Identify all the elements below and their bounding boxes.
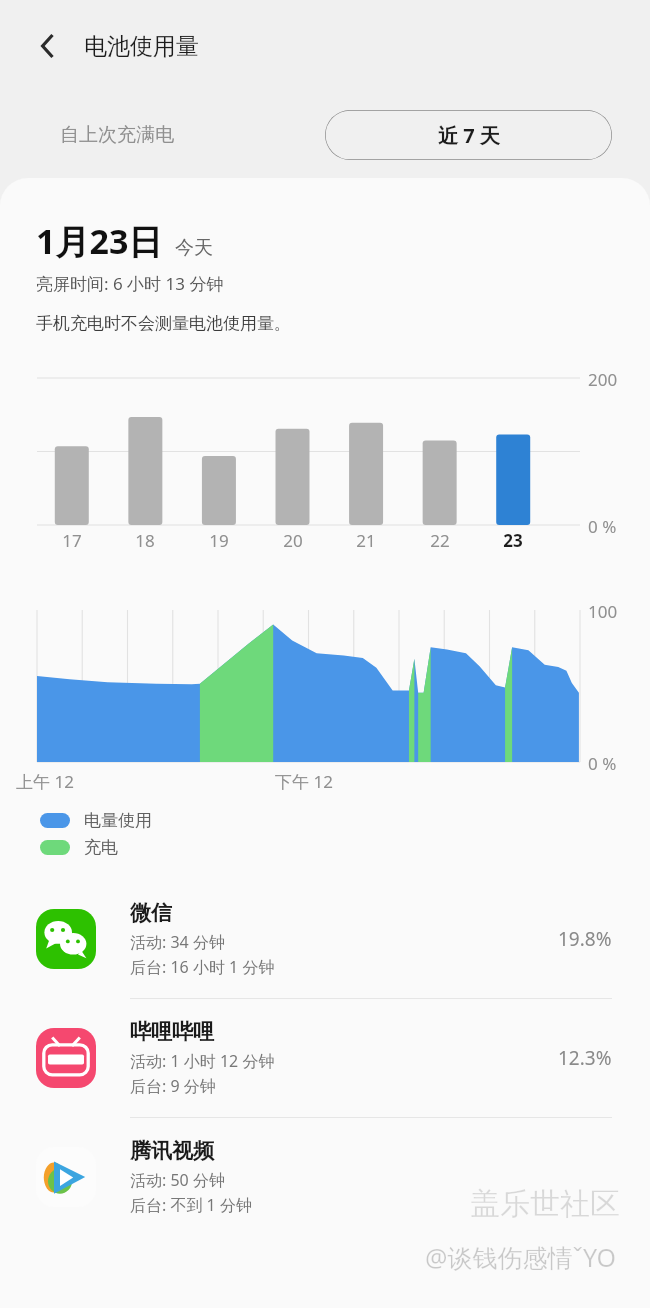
staticText: 活动: 1 小时 12 分钟 xyxy=(130,1050,275,1072)
staticText: 自上次充满电 xyxy=(60,123,174,147)
staticText: 电量使用 xyxy=(84,810,152,831)
staticText: 活动: 50 分钟 xyxy=(130,1169,225,1191)
button[interactable]: 微信 xyxy=(0,880,650,998)
staticText: 腾讯视频 xyxy=(130,1138,214,1164)
staticText: 上午 12 xyxy=(16,770,74,792)
staticText: 亮屏时间: 6 小时 13 分钟 xyxy=(36,272,224,295)
button[interactable]: 腾讯视频 xyxy=(0,1118,650,1236)
staticText: 12.3% xyxy=(558,1045,612,1071)
staticText: 近 7 天 xyxy=(438,122,500,149)
staticText: 0 % xyxy=(588,752,617,775)
staticText: 23 xyxy=(497,529,529,552)
staticText: 20 xyxy=(277,529,309,552)
button[interactable]: 哔哩哔哩 xyxy=(0,999,650,1117)
staticText: 后台: 16 小时 1 分钟 xyxy=(130,956,275,978)
staticText: 19 xyxy=(203,529,235,552)
staticText: 22 xyxy=(424,529,456,552)
staticText: 21 xyxy=(350,529,382,552)
staticText: 后台: 9 分钟 xyxy=(130,1075,216,1097)
staticText: 活动: 34 分钟 xyxy=(130,931,225,953)
staticText: 200 xyxy=(588,368,618,391)
staticText: 盖乐世社区 xyxy=(470,1185,620,1223)
staticText: 1月23日 xyxy=(36,218,163,264)
staticText: 电池使用量 xyxy=(84,32,199,61)
staticText: 充电 xyxy=(84,837,118,858)
staticText: 下午 12 xyxy=(275,770,333,792)
staticText: 100 xyxy=(588,600,618,623)
staticText: 今天 xyxy=(175,236,213,260)
staticText: 19.8% xyxy=(558,926,612,952)
staticText: @谈钱伤感情ˇYO xyxy=(425,1240,617,1274)
staticText: 18 xyxy=(129,529,161,552)
staticText: 后台: 不到 1 分钟 xyxy=(130,1194,252,1216)
staticText: 微信 xyxy=(130,900,172,926)
button[interactable]: 自上次充满电 xyxy=(60,110,174,160)
staticText: 手机充电时不会测量电池使用量。 xyxy=(36,313,291,334)
staticText: 哔哩哔哩 xyxy=(130,1019,214,1045)
staticText: 17 xyxy=(56,529,88,552)
button[interactable]: Back xyxy=(22,21,72,71)
button[interactable]: 近 7 天 xyxy=(325,110,612,160)
staticText: 0 % xyxy=(588,515,617,538)
